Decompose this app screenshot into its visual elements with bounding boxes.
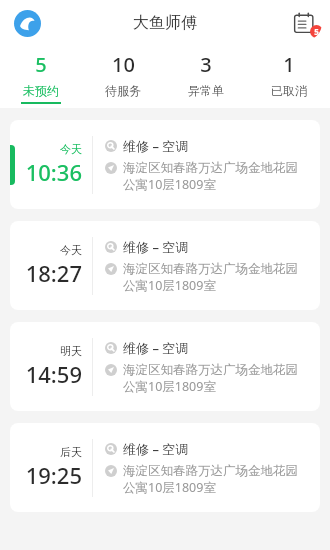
button[interactable]: 明天 [10,322,320,411]
button[interactable]: 5 [0,46,82,108]
staticText: 10 [112,51,135,78]
staticText: 后天 [60,445,82,459]
staticText: 1 [283,51,295,78]
staticText: 海淀区知春路万达广场金地花园 [123,362,298,378]
staticText: 5 [314,26,319,37]
button[interactable]: 10 [82,46,164,108]
staticText: 5 [35,51,47,78]
button[interactable]: 1 [247,46,330,108]
staticText: 明天 [60,344,82,358]
staticText: 10:36 [25,157,82,187]
staticText: 今天 [60,243,82,257]
button[interactable]: Orders [286,5,322,41]
staticText: 公寓10层1809室 [123,479,216,496]
button[interactable]: 今天 [10,221,320,310]
staticText: 维修 – 空调 [123,238,189,256]
staticText: 19:25 [25,460,82,490]
staticText: 14:59 [25,359,82,389]
staticText: 维修 – 空调 [123,339,189,357]
staticText: 维修 – 空调 [123,137,189,155]
button[interactable]: 3 [164,46,247,108]
staticText: 今天 [60,142,82,156]
staticText: 异常单 [188,83,224,98]
button[interactable]: Profile [10,6,44,40]
staticText: 18:27 [25,258,82,288]
staticText: 未预约 [23,83,59,98]
button[interactable]: 后天 [10,423,320,512]
staticText: 海淀区知春路万达广场金地花园 [123,463,298,479]
staticText: 公寓10层1809室 [123,378,216,395]
staticText: 海淀区知春路万达广场金地花园 [123,160,298,176]
staticText: 维修 – 空调 [123,440,189,458]
staticText: 3 [200,51,212,78]
staticText: 已取消 [271,83,307,98]
staticText: 公寓10层1809室 [123,277,216,294]
staticText: 公寓10层1809室 [123,176,216,193]
staticText: 大鱼师傅 [133,13,197,33]
button[interactable]: 今天 [10,120,320,209]
staticText: 海淀区知春路万达广场金地花园 [123,261,298,277]
staticText: 待服务 [105,83,141,98]
